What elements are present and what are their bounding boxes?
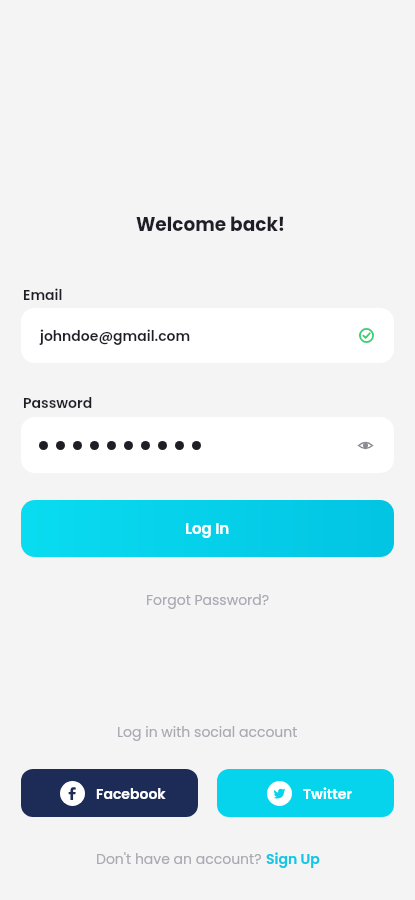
staticText: Don't have an account? [96,849,266,869]
staticText: Log In [185,518,230,539]
button[interactable]: johndoe@gmail.com [21,308,394,363]
staticText: Email [23,285,63,305]
button[interactable]: Show password [21,417,394,473]
staticText: Welcome back! [3,212,415,238]
button[interactable]: Forgot Password? [138,586,278,614]
button[interactable]: Sign Up [266,849,320,869]
button[interactable]: Show password [358,438,373,453]
button[interactable]: Twitter [217,769,394,817]
staticText: Log in with social account [117,722,298,742]
button[interactable]: Facebook [21,769,198,817]
staticText: johndoe@gmail.com [40,326,191,346]
staticText: Twitter [303,784,352,804]
staticText: Facebook [96,784,166,804]
staticText: Password [23,393,93,413]
button[interactable]: Log In [21,500,394,557]
